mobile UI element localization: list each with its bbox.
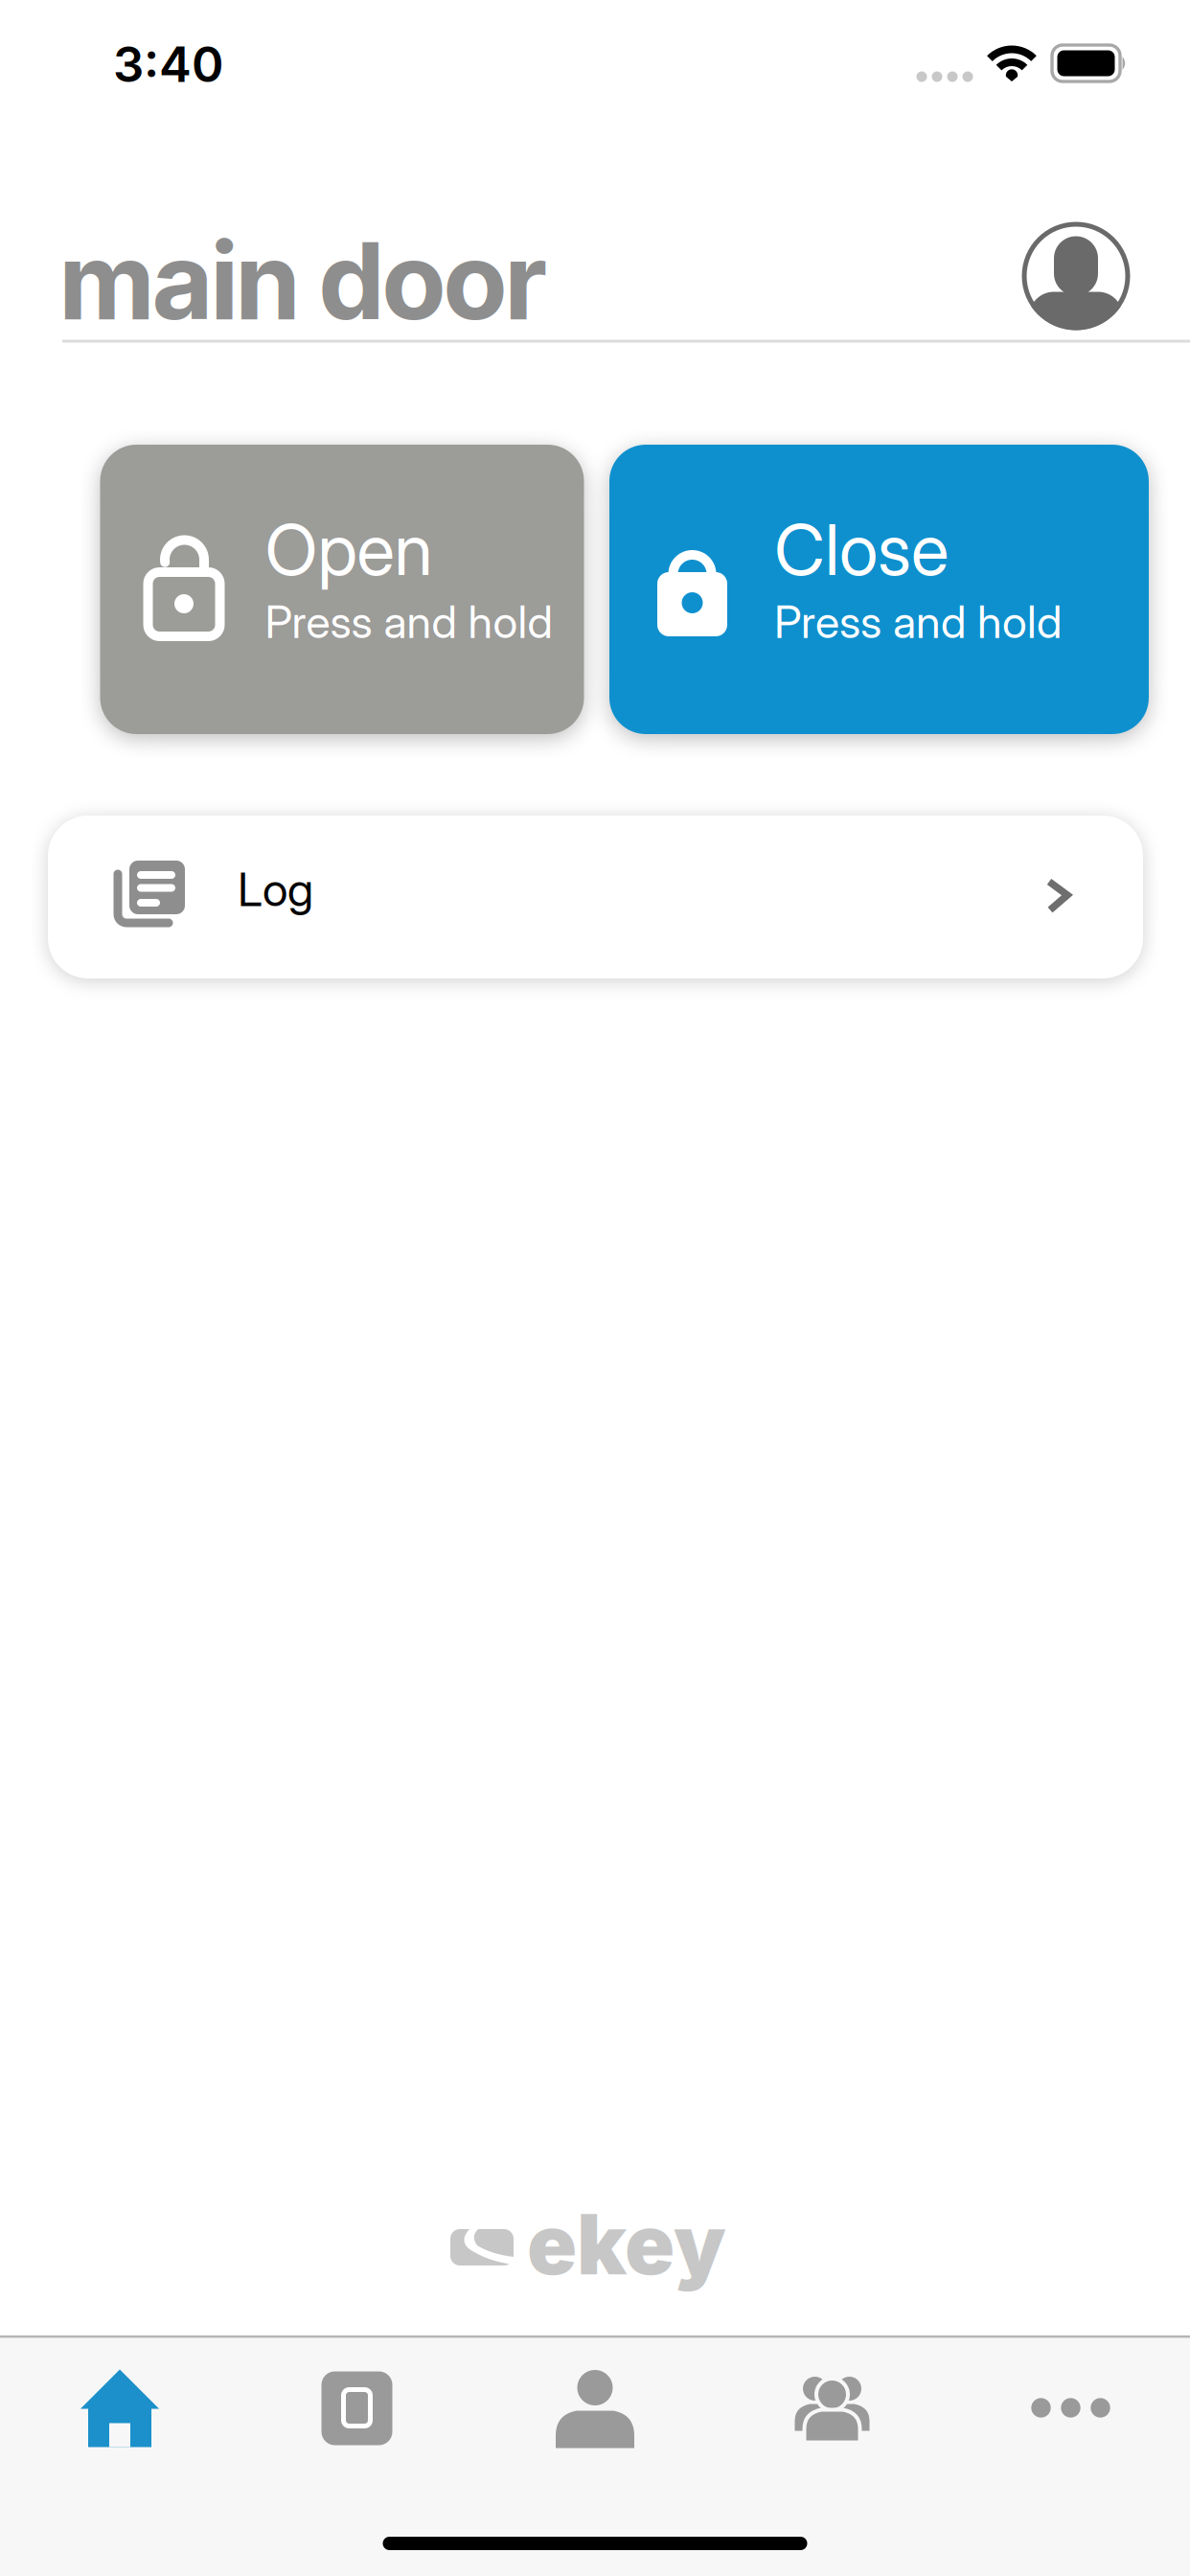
button[interactable]: Users xyxy=(714,2335,952,2484)
button[interactable]: Open xyxy=(100,445,584,734)
staticText: main door xyxy=(60,217,545,345)
button[interactable]: Log xyxy=(48,816,1143,978)
staticText: Press and hold xyxy=(774,595,1062,649)
staticText: Log xyxy=(238,862,313,917)
button[interactable]: More xyxy=(952,2335,1190,2484)
button[interactable]: Profile xyxy=(1022,222,1130,330)
button[interactable]: Home xyxy=(0,2335,238,2484)
staticText: Press and hold xyxy=(265,595,552,649)
button[interactable]: Close xyxy=(609,445,1149,734)
staticText: Close xyxy=(774,507,949,592)
staticText: 3:40 xyxy=(113,35,223,94)
button[interactable]: Profile xyxy=(476,2335,714,2484)
button[interactable]: Door station xyxy=(238,2335,476,2484)
staticText: ekey xyxy=(527,2195,726,2294)
staticText: Open xyxy=(265,507,433,592)
